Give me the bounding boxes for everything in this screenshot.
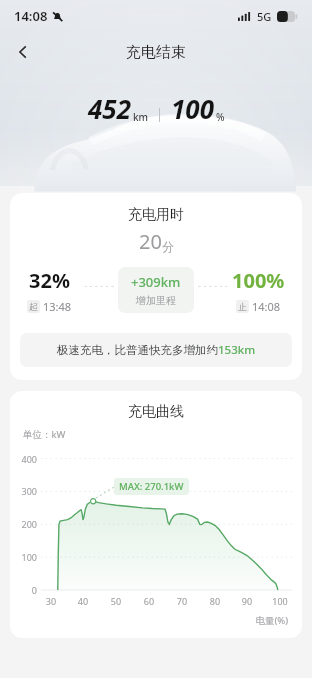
staticText: 分 xyxy=(162,239,174,254)
staticText: 起 xyxy=(29,301,38,312)
staticText: 100 xyxy=(266,595,294,607)
staticText: 100 xyxy=(10,551,37,563)
staticText: 32% xyxy=(29,267,70,294)
staticText: 5G xyxy=(257,9,272,24)
staticText: 50 xyxy=(102,595,130,607)
button[interactable]: Back xyxy=(5,34,41,70)
staticText: 电量(%) xyxy=(10,614,288,627)
staticText: 20 xyxy=(139,228,162,255)
staticText: 452 xyxy=(88,91,131,126)
button[interactable]: 极速充电，比普通快充多增加约 xyxy=(20,333,292,367)
staticText: 70 xyxy=(168,595,196,607)
staticText: 充电用时 xyxy=(128,206,184,224)
staticText: 153km xyxy=(218,342,256,358)
staticText: 充电曲线 xyxy=(10,403,302,421)
staticText: 增加里程 xyxy=(136,294,176,307)
staticText: 充电结束 xyxy=(126,43,186,62)
staticText: km xyxy=(133,110,149,124)
button[interactable]: MAX: 270.1kW xyxy=(114,478,189,495)
staticText: 30 xyxy=(37,595,65,607)
staticText: MAX: 270.1kW xyxy=(119,480,184,493)
staticText: 0 xyxy=(10,584,37,596)
staticText: 400 xyxy=(10,453,37,465)
staticText: 300 xyxy=(10,485,37,497)
staticText: 100 xyxy=(171,91,214,126)
staticText: 14:08 xyxy=(252,299,281,314)
staticText: 200 xyxy=(10,518,37,530)
staticText: 止 xyxy=(238,301,247,312)
staticText: 80 xyxy=(201,595,229,607)
staticText: 极速充电，比普通快充多增加约 xyxy=(57,343,218,357)
staticText: 单位：kW xyxy=(23,428,66,441)
staticText: 60 xyxy=(135,595,163,607)
staticText: 100% xyxy=(232,267,285,294)
staticText: 14:08 xyxy=(14,7,48,25)
staticText: % xyxy=(216,110,225,124)
staticText: 40 xyxy=(69,595,97,607)
button[interactable]: +309km xyxy=(118,267,194,313)
staticText: 13:48 xyxy=(43,299,72,314)
staticText: +309km xyxy=(131,273,181,291)
staticText: 90 xyxy=(233,595,261,607)
